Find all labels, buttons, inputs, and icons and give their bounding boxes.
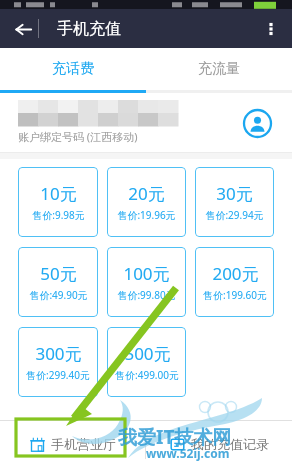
button[interactable]: 300元 bbox=[18, 327, 98, 397]
staticText: 我的充值记录 bbox=[191, 436, 269, 452]
staticText: 手机营业厅 bbox=[51, 436, 116, 452]
button[interactable]: 100元 bbox=[107, 247, 186, 317]
staticText: 10元 bbox=[40, 182, 77, 205]
staticText: 500元 bbox=[124, 342, 171, 365]
staticText: 售价:199.60元 bbox=[203, 288, 267, 302]
staticText: 100元 bbox=[123, 262, 170, 285]
staticText: 账户绑定号码 (江西移动) bbox=[18, 129, 138, 144]
button[interactable]: 500元 bbox=[107, 327, 186, 397]
button[interactable]: 我的充值记录 bbox=[146, 421, 292, 467]
staticText: 售价:9.98元 bbox=[32, 208, 85, 222]
button[interactable]: 手机营业厅 bbox=[0, 421, 145, 467]
button[interactable]: More options bbox=[253, 11, 289, 47]
button[interactable]: 充话费 bbox=[0, 48, 146, 90]
button[interactable]: 10元 bbox=[18, 167, 98, 237]
staticText: 30元 bbox=[216, 182, 253, 205]
staticText: 充话费 bbox=[52, 60, 94, 78]
button[interactable]: 充流量 bbox=[146, 48, 292, 90]
staticText: www.52ij.com bbox=[146, 445, 230, 461]
staticText: 手机充值 bbox=[57, 19, 121, 39]
staticText: 售价:29.94元 bbox=[205, 208, 264, 222]
staticText: 充流量 bbox=[198, 60, 240, 78]
staticText: 300元 bbox=[35, 342, 82, 365]
button[interactable]: 20元 bbox=[107, 167, 186, 237]
staticText: 售价:499.00元 bbox=[115, 368, 179, 382]
staticText: 200元 bbox=[212, 262, 259, 285]
staticText: 20元 bbox=[128, 182, 165, 205]
button[interactable]: 50元 bbox=[18, 247, 98, 317]
button[interactable]: 200元 bbox=[195, 247, 274, 317]
staticText: 50元 bbox=[40, 262, 77, 285]
button[interactable]: Account bbox=[240, 106, 274, 140]
button[interactable]: Back bbox=[6, 12, 40, 46]
button[interactable]: 30元 bbox=[195, 167, 274, 237]
staticText: 售价:49.90元 bbox=[29, 288, 88, 302]
staticText: 我爱IT技术网 bbox=[118, 424, 232, 450]
staticText: 售价:99.80元 bbox=[117, 288, 176, 302]
staticText: 售价:19.96元 bbox=[117, 208, 176, 222]
staticText: 售价:299.40元 bbox=[26, 368, 90, 382]
